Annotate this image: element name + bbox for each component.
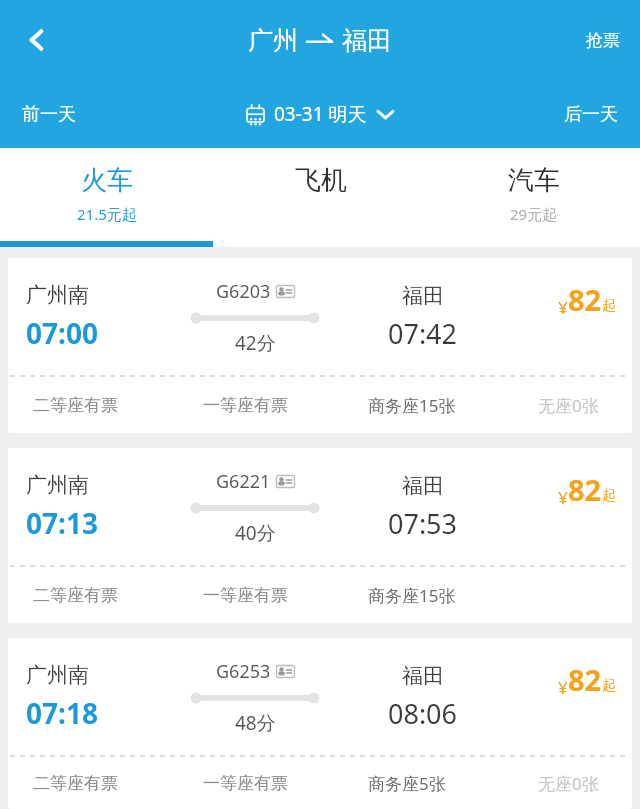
staticText: 82: [568, 660, 602, 699]
button[interactable]: 03-31 明天: [236, 93, 404, 135]
staticText: 福田: [402, 283, 444, 309]
staticText: 21.5元起: [77, 204, 137, 224]
staticText: 07:00: [26, 314, 98, 352]
staticText: 火车: [81, 164, 133, 197]
staticText: 一等座有票: [203, 773, 288, 794]
staticText: 42分: [235, 330, 276, 356]
staticText: 08:06: [388, 695, 458, 732]
staticText: 29元起: [510, 204, 558, 224]
staticText: 抢票: [586, 30, 620, 51]
staticText: 飞机: [295, 164, 347, 197]
button[interactable]: 汽车: [427, 148, 640, 247]
staticText: 03-31 明天: [274, 101, 367, 127]
staticText: 二等座有票: [33, 585, 118, 606]
staticText: G6221: [216, 469, 271, 494]
staticText: 无座0张: [538, 394, 599, 417]
staticText: 48分: [235, 710, 276, 736]
staticText: G6203: [216, 279, 271, 304]
staticText: 前一天: [22, 103, 76, 126]
staticText: 商务座15张: [368, 584, 456, 607]
button[interactable]: 抢票: [566, 18, 640, 63]
button[interactable]: 后一天: [546, 93, 640, 136]
staticText: ¥: [558, 676, 568, 699]
staticText: ¥: [558, 486, 568, 509]
staticText: 二等座有票: [33, 395, 118, 416]
staticText: 一等座有票: [203, 395, 288, 416]
staticText: 07:13: [26, 504, 98, 542]
staticText: 商务座15张: [368, 394, 456, 417]
staticText: 福田: [402, 473, 444, 499]
staticText: 广州南: [26, 282, 89, 308]
button[interactable]: 飞机: [214, 148, 427, 247]
staticText: 福田: [342, 25, 392, 56]
button[interactable]: 广州南: [8, 448, 632, 623]
staticText: 一等座有票: [203, 585, 288, 606]
staticText: 起: [602, 487, 616, 505]
staticText: 起: [602, 297, 616, 315]
staticText: 起: [602, 677, 616, 695]
staticText: 广州南: [26, 662, 89, 688]
staticText: 福田: [402, 663, 444, 689]
staticText: 后一天: [564, 103, 618, 126]
staticText: 无座0张: [538, 772, 599, 795]
staticText: 82: [568, 470, 602, 509]
staticText: 汽车: [508, 164, 560, 197]
staticText: 广州南: [26, 472, 89, 498]
button[interactable]: 前一天: [0, 93, 94, 136]
staticText: 二等座有票: [33, 773, 118, 794]
staticText: ¥: [558, 296, 568, 319]
staticText: 07:53: [388, 505, 458, 542]
button[interactable]: 广州南: [8, 638, 632, 809]
button[interactable]: 火车: [0, 148, 214, 247]
button[interactable]: Back: [8, 11, 66, 69]
staticText: 07:18: [26, 694, 98, 732]
staticText: 40分: [235, 520, 276, 546]
staticText: 07:42: [388, 315, 458, 352]
staticText: G6253: [216, 659, 271, 684]
staticText: 82: [568, 280, 602, 319]
staticText: 广州: [248, 25, 298, 56]
staticText: 商务座5张: [368, 772, 446, 795]
button[interactable]: 广州南: [8, 258, 632, 433]
